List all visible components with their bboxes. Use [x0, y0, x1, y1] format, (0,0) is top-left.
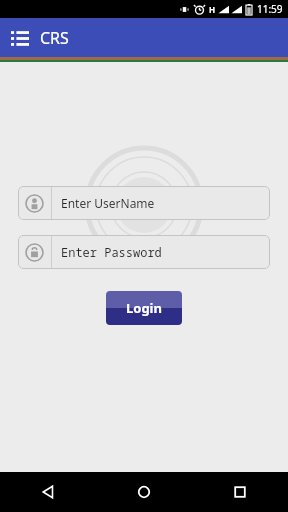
button[interactable]: Menu [8, 26, 32, 50]
button[interactable]: Back [0, 472, 96, 512]
staticText: 11:59 [257, 2, 283, 16]
button[interactable]: Enter Password [18, 235, 270, 269]
staticText: Login [126, 299, 162, 317]
button[interactable]: Login [106, 291, 182, 325]
staticText: Enter Password [61, 244, 162, 260]
button[interactable]: Home [96, 472, 192, 512]
staticText: H [209, 4, 216, 15]
button[interactable]: Recents [192, 472, 288, 512]
staticText: CRS [40, 27, 69, 49]
staticText: Enter UserName [61, 195, 155, 211]
button[interactable]: Enter UserName [18, 186, 270, 220]
